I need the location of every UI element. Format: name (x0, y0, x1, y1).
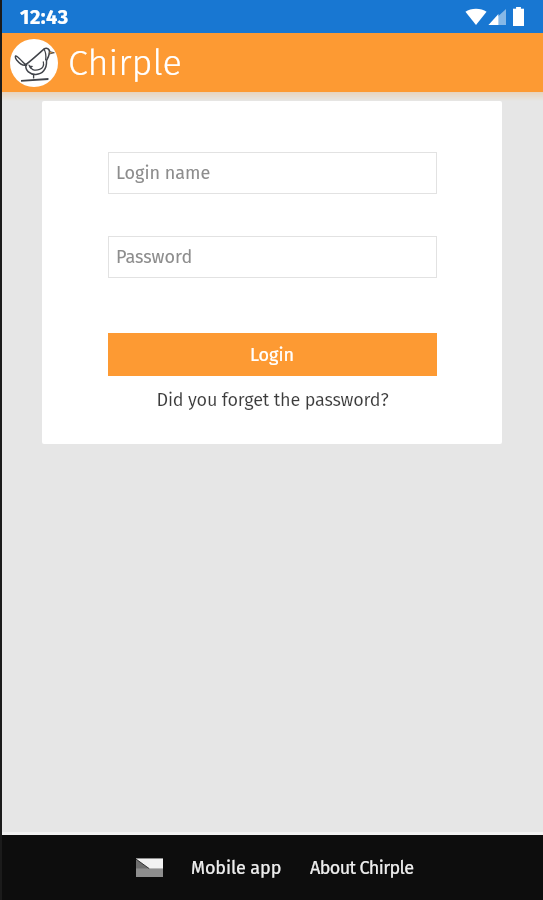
staticText: Did you forget the password? (156, 389, 389, 411)
button[interactable]: Login name (108, 152, 437, 194)
staticText: About Chirple (310, 857, 414, 879)
button[interactable]: Password (108, 236, 437, 278)
button[interactable]: Chirple logo (10, 39, 58, 87)
staticText: Login name (116, 162, 211, 184)
staticText: 12:43 (20, 5, 69, 29)
staticText: Login (250, 344, 295, 366)
button[interactable]: About Chirple (306, 849, 418, 887)
button[interactable]: Mobile app (187, 849, 286, 887)
button[interactable]: Login (108, 333, 437, 376)
staticText: Mobile app (191, 857, 282, 879)
button[interactable]: Did you forget the password? (108, 389, 437, 411)
staticText: Password (116, 246, 193, 268)
staticText: Chirple (68, 41, 182, 84)
button[interactable]: Mail (127, 846, 172, 889)
